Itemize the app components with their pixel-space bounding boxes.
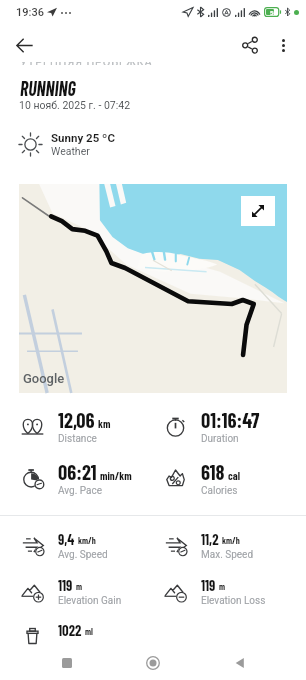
staticText: УТРЕННЯЯ ПРОБЕЖКА bbox=[20, 62, 153, 65]
button[interactable]: Back bbox=[7, 28, 41, 62]
button[interactable]: 11,2 bbox=[163, 529, 295, 567]
staticText: 11,2 bbox=[201, 530, 219, 547]
staticText: km bbox=[98, 417, 111, 430]
staticText: 06:21 bbox=[58, 459, 97, 484]
staticText: 119 bbox=[201, 576, 216, 593]
button[interactable]: Back bbox=[220, 646, 260, 680]
staticText: 9,4 bbox=[58, 530, 75, 547]
button[interactable]: Expand map bbox=[19, 184, 287, 393]
staticText: ml bbox=[85, 626, 93, 637]
button[interactable]: 9,4 bbox=[20, 529, 152, 567]
staticText: Calories bbox=[201, 485, 238, 497]
button[interactable]: 12,06 bbox=[20, 406, 152, 448]
button[interactable]: 119 bbox=[20, 575, 152, 613]
staticText: 10 нояб. 2025 г. - 07:42 bbox=[19, 99, 131, 111]
staticText: km/h bbox=[222, 535, 240, 546]
staticText: 50 bbox=[270, 9, 277, 16]
staticText: Sunny 25 ºC bbox=[51, 131, 115, 144]
staticText: Distance bbox=[58, 433, 97, 445]
staticText: cal bbox=[228, 469, 240, 482]
staticText: 01:16:47 bbox=[201, 407, 260, 432]
button[interactable]: Recents bbox=[47, 646, 87, 680]
button[interactable]: Expand map bbox=[241, 196, 275, 226]
staticText: Elevation Loss bbox=[201, 595, 266, 607]
button[interactable]: More options bbox=[266, 28, 300, 62]
button[interactable]: Share bbox=[233, 28, 267, 62]
staticText: Max. Speed bbox=[201, 549, 254, 561]
staticText: min/km bbox=[100, 469, 132, 482]
staticText: Avg. Speed bbox=[58, 549, 108, 561]
staticText: 119 bbox=[58, 576, 73, 593]
staticText: km/h bbox=[78, 535, 96, 546]
staticText: 12,06 bbox=[58, 407, 95, 432]
button[interactable]: 119 bbox=[163, 575, 295, 613]
staticText: Duration bbox=[201, 433, 239, 445]
staticText: Avg. Pace bbox=[58, 485, 103, 497]
button[interactable]: 618 bbox=[163, 458, 295, 500]
button[interactable]: Sunny 25 ºC bbox=[0, 128, 306, 160]
button[interactable]: 1022 bbox=[20, 620, 152, 658]
staticText: Weather bbox=[51, 145, 90, 157]
staticText: Elevation Gain bbox=[58, 595, 122, 607]
staticText: m bbox=[76, 581, 83, 592]
staticText: 618 bbox=[201, 459, 225, 484]
button[interactable]: 06:21 bbox=[20, 458, 152, 500]
button[interactable]: 01:16:47 bbox=[163, 406, 295, 448]
staticText: 19:36 bbox=[16, 6, 44, 19]
staticText: RUNNING bbox=[20, 76, 76, 100]
staticText: Google bbox=[23, 371, 65, 386]
staticText: m bbox=[219, 581, 226, 592]
button[interactable]: Home bbox=[133, 646, 173, 680]
staticText: 1022 bbox=[58, 621, 82, 638]
